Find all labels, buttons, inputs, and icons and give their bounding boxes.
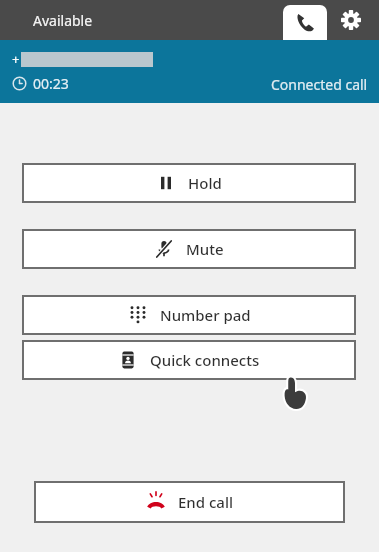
staticText: Hold xyxy=(188,173,222,193)
staticText: 00:23 xyxy=(33,74,69,93)
staticText: Number pad xyxy=(160,305,251,325)
button[interactable]: Quick connects xyxy=(22,340,356,380)
staticText: Available xyxy=(33,11,93,30)
staticText: Mute xyxy=(186,239,224,259)
button[interactable]: Mute xyxy=(22,229,356,269)
staticText: Quick connects xyxy=(150,350,260,370)
button[interactable]: Hold xyxy=(22,163,356,203)
staticText: End call xyxy=(178,492,234,512)
button[interactable]: Phone xyxy=(283,5,327,40)
button[interactable]: Settings xyxy=(335,4,367,36)
staticText: + xyxy=(12,50,20,68)
staticText: Connected call xyxy=(271,75,368,94)
button[interactable]: Number pad xyxy=(22,295,356,335)
button[interactable]: End call xyxy=(34,481,345,523)
